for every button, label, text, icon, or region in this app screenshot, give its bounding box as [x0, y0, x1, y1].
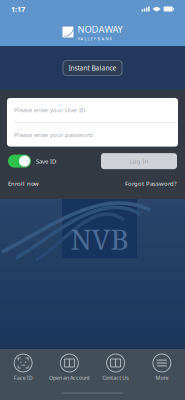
button[interactable]: Enroll now — [8, 178, 39, 190]
button[interactable]: Forgot Password? — [125, 178, 177, 190]
button[interactable]: Save ID — [8, 153, 56, 170]
staticText: Instant Balance — [68, 63, 116, 73]
staticText: Enroll now — [8, 180, 39, 188]
button[interactable]: Log In — [101, 153, 177, 169]
staticText: Save ID — [36, 157, 56, 165]
staticText: 1:17 — [11, 4, 25, 14]
staticText: Forgot Password? — [125, 180, 177, 188]
button[interactable]: More — [139, 354, 185, 381]
staticText: Please enter your password — [14, 131, 93, 139]
button[interactable]: Instant Balance — [63, 60, 122, 75]
staticText: Contact Us — [102, 374, 129, 381]
staticText: Log In — [129, 157, 148, 165]
staticText: Please enter your User ID — [14, 106, 85, 114]
button[interactable]: Open an Account — [46, 354, 92, 381]
staticText: More — [155, 374, 168, 381]
staticText: NVB — [70, 220, 128, 258]
button[interactable]: Contact Us — [92, 354, 139, 381]
staticText: V A L L E Y B A N K — [77, 36, 111, 41]
button[interactable]: Face ID — [0, 354, 46, 381]
staticText: Face ID — [14, 374, 33, 381]
staticText: Open an Account — [49, 374, 90, 381]
staticText: NODAWAY — [77, 23, 122, 35]
